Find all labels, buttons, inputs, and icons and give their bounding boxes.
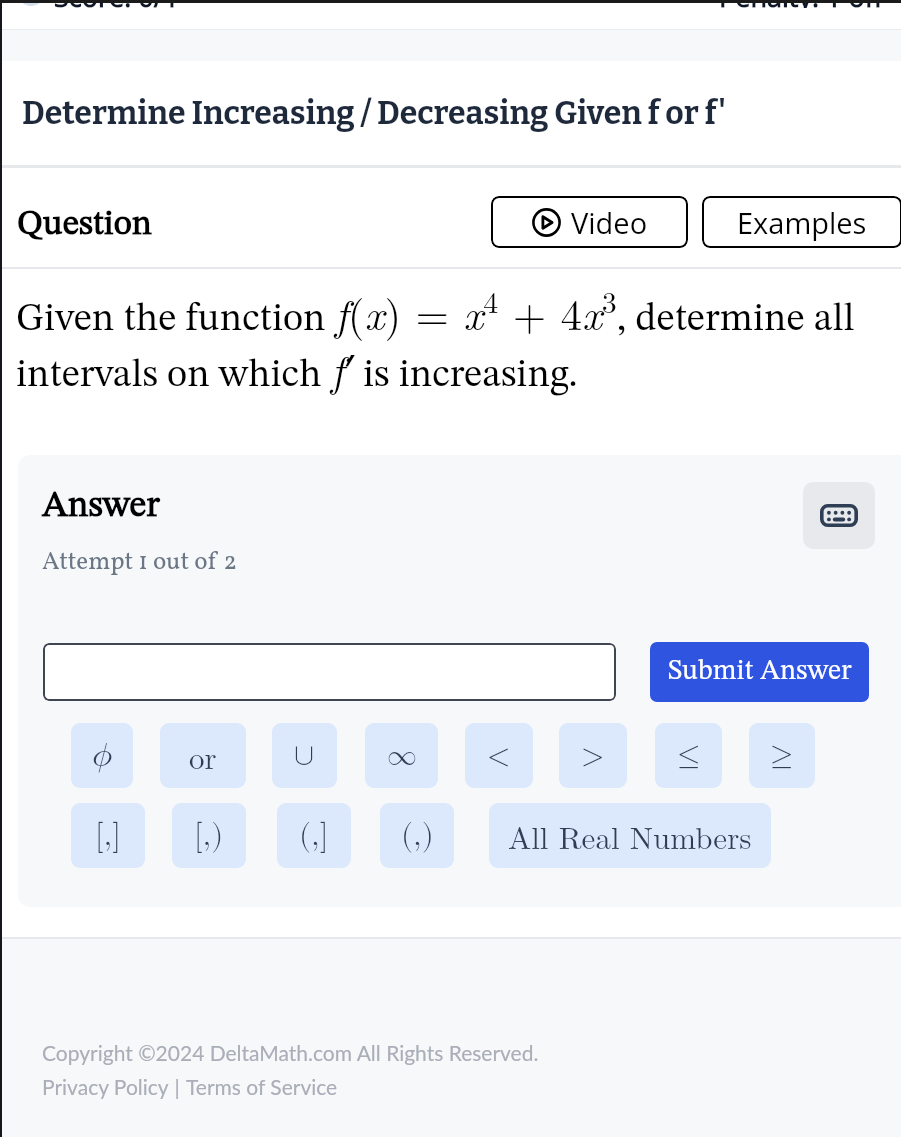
staticText: Copyright ©2024 DeltaMath.com All Rights… [42,1040,539,1065]
button[interactable]: > [559,723,627,788]
button[interactable]: (,] [277,803,351,868]
staticText: Video [571,203,648,242]
staticText: Attempt 1 out of 2 [42,545,238,580]
staticText: > [581,741,605,771]
button[interactable]: or [160,723,246,788]
staticText: Question [17,207,152,242]
staticText: ≤ [677,741,701,771]
staticText: (,] [299,820,329,851]
button[interactable]: All Real Numbers [489,803,771,868]
staticText: Submit Answer [668,658,852,686]
staticText: (,) [401,820,434,851]
staticText: | [169,1074,186,1099]
button[interactable]: Video [491,196,688,248]
button[interactable] [43,643,616,701]
button[interactable]: ∞ [365,723,438,788]
staticText: [,) [194,820,224,851]
staticText: ≥ [770,741,794,771]
staticText: ∞ [387,741,417,771]
button[interactable]: Terms of Service [186,1074,338,1099]
button[interactable]: Privacy Policy [42,1074,169,1099]
button[interactable]: < [465,723,533,788]
staticText: Score: 0/1 [54,0,180,8]
button[interactable]: [,] [71,803,145,868]
staticText: Answer [42,489,160,525]
button[interactable]: [,) [172,803,246,868]
button[interactable]: ∪ [272,723,337,788]
button[interactable]: Submit Answer [650,642,869,702]
button[interactable]: 𝜙 [71,723,133,788]
button[interactable]: Examples [702,196,901,248]
button[interactable]: Toggle math keyboard [803,482,875,549]
staticText: Penalty: 1 off [719,0,883,8]
staticText: [,] [95,820,121,851]
staticText: 𝜙 [92,739,113,773]
staticText: ∪ [294,741,315,771]
button[interactable]: (,) [380,803,454,868]
staticText: Determine Increasing / Decreasing Given … [22,94,727,132]
staticText: All Real Numbers [508,814,752,858]
button[interactable]: ≤ [655,723,722,788]
staticText: Examples [737,203,867,242]
button[interactable]: ≥ [749,723,815,788]
staticText: < [487,741,511,771]
staticText: Given the function f(x) = x4 + 4x3, dete… [16,279,896,399]
staticText: or [189,734,217,778]
